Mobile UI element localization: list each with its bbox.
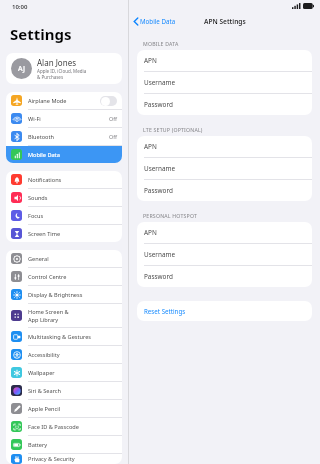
button[interactable]: Username (137, 72, 312, 93)
button[interactable]: Display & Brightness (6, 286, 122, 303)
staticText: Control Centre (28, 273, 67, 281)
button[interactable]: Notifications (6, 171, 122, 188)
button[interactable]: Face ID & Passcode (6, 418, 122, 435)
staticText: Username (144, 250, 176, 259)
other: Airplane Mode toggle (100, 96, 117, 106)
button[interactable]: Battery (6, 436, 122, 453)
staticText: Alan Jones (37, 57, 76, 68)
staticText: Face ID & Passcode (28, 423, 79, 431)
button[interactable]: Password (137, 94, 312, 115)
staticText: PERSONAL HOTSPOT (143, 212, 198, 219)
staticText: AJ (18, 64, 25, 74)
button[interactable]: Password (137, 266, 312, 287)
staticText: Wi-Fi (28, 115, 41, 123)
staticText: LTE SETUP (OPTIONAL) (143, 126, 203, 133)
staticText: Battery (28, 441, 48, 449)
button[interactable]: Mobile Data (129, 15, 180, 27)
staticText: APN (144, 142, 157, 151)
button[interactable]: AJ (6, 53, 122, 84)
staticText: Home Screen & (28, 308, 69, 316)
staticText: Wallpaper (28, 369, 55, 377)
staticText: Apple Pencil (28, 405, 61, 413)
staticText: APN (144, 56, 157, 65)
button[interactable]: Mobile Data (6, 146, 122, 163)
staticText: Mobile Data (28, 151, 60, 159)
button[interactable]: Wallpaper (6, 364, 122, 381)
button[interactable]: Accessibility (6, 346, 122, 363)
staticText: Off (109, 115, 117, 122)
staticText: Reset Settings (144, 307, 186, 315)
staticText: Sounds (28, 194, 48, 202)
button[interactable]: Password (137, 180, 312, 201)
staticText: Display & Brightness (28, 291, 83, 299)
button[interactable]: APN (137, 50, 312, 71)
staticText: Off (109, 133, 117, 140)
staticText: Airplane Mode (28, 97, 67, 105)
staticText: Apple ID, iCloud, Media (37, 68, 87, 74)
staticText: Privacy & Security (28, 455, 75, 463)
button[interactable]: Home Screen & (6, 304, 122, 327)
button[interactable]: Multitasking & Gestures (6, 328, 122, 345)
button[interactable]: APN (137, 222, 312, 243)
staticText: 10:00 (12, 3, 28, 11)
staticText: Settings (10, 24, 72, 44)
staticText: Accessibility (28, 351, 60, 359)
staticText: Username (144, 78, 176, 87)
staticText: Notifications (28, 176, 62, 184)
button[interactable]: Sounds (6, 189, 122, 206)
staticText: App Library (28, 316, 59, 324)
staticText: Password (144, 272, 173, 281)
button[interactable]: Wi-Fi (6, 110, 122, 127)
staticText: General (28, 255, 49, 263)
button[interactable]: Username (137, 244, 312, 265)
staticText: & Purchases (37, 74, 64, 80)
staticText: Username (144, 164, 176, 173)
button[interactable]: Username (137, 158, 312, 179)
button[interactable]: Apple Pencil (6, 400, 122, 417)
staticText: Bluetooth (28, 133, 54, 141)
button[interactable]: Siri & Search (6, 382, 122, 399)
staticText: Multitasking & Gestures (28, 333, 92, 341)
button[interactable]: Privacy & Security (6, 454, 122, 464)
button[interactable]: Airplane Mode (6, 92, 122, 109)
button[interactable]: Bluetooth (6, 128, 122, 145)
staticText: Siri & Search (28, 387, 61, 395)
staticText: Password (144, 186, 173, 195)
staticText: Mobile Data (140, 17, 176, 25)
button[interactable]: APN (137, 136, 312, 157)
staticText: Focus (28, 212, 44, 220)
staticText: APN Settings (204, 17, 246, 26)
staticText: Password (144, 100, 173, 109)
staticText: MOBILE DATA (143, 40, 179, 47)
button[interactable]: Focus (6, 207, 122, 224)
button[interactable]: Screen Time (6, 225, 122, 242)
button[interactable]: Control Centre (6, 268, 122, 285)
staticText: APN (144, 228, 157, 237)
button[interactable]: Reset Settings (137, 301, 312, 321)
staticText: Screen Time (28, 230, 61, 238)
button[interactable]: General (6, 250, 122, 267)
